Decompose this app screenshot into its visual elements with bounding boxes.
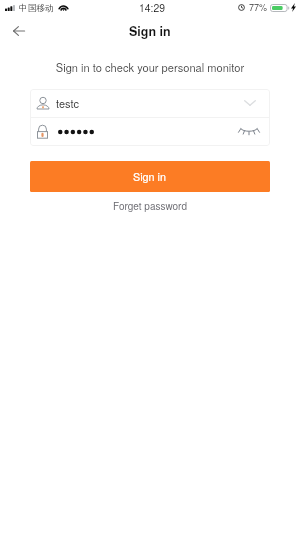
button[interactable]: Show password	[30, 118, 270, 146]
staticText: 14:29	[139, 0, 165, 15]
button[interactable]: Back	[6, 18, 32, 44]
button[interactable]: testc	[30, 89, 270, 117]
staticText: testc	[56, 95, 80, 111]
staticText: Sign in	[133, 169, 167, 184]
staticText: 77%	[249, 1, 268, 14]
staticText: Sign in to check your personal monitor	[0, 59, 300, 75]
button[interactable]: Forget password	[0, 199, 300, 213]
button[interactable]: Show accounts	[242, 95, 258, 111]
button[interactable]: Show password	[238, 125, 260, 139]
staticText: Sign in	[129, 22, 171, 40]
button[interactable]: Sign in	[30, 161, 270, 192]
staticText: 中国移动	[19, 3, 54, 14]
